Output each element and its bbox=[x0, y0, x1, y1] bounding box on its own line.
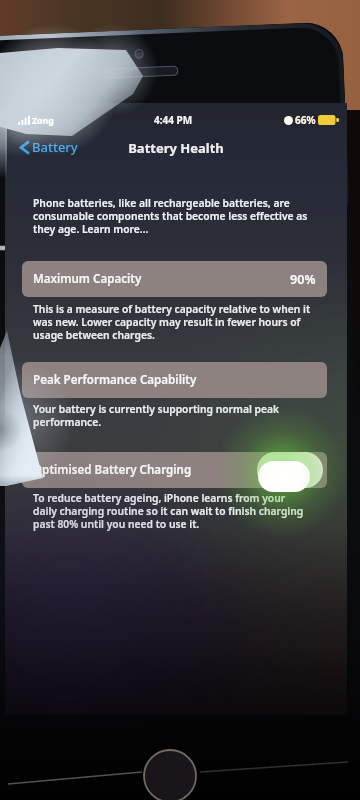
button[interactable]: Maximum Capacity bbox=[22, 261, 327, 297]
staticText: 90% bbox=[290, 271, 316, 288]
staticText: Maximum Capacity bbox=[33, 271, 142, 287]
staticText: Peak Performance Capability bbox=[33, 372, 197, 388]
staticText: This is a measure of battery capacity re… bbox=[33, 302, 319, 342]
staticText: Optimised Battery Charging bbox=[33, 462, 192, 478]
staticText: Zong bbox=[32, 114, 53, 126]
button[interactable]: Peak Performance Capability bbox=[22, 362, 327, 398]
staticText: Battery Health bbox=[5, 139, 347, 157]
staticText: Phone batteries, like all rechargeable b… bbox=[33, 196, 315, 236]
staticText: Battery bbox=[32, 138, 78, 156]
staticText: 4:44 PM bbox=[154, 113, 193, 127]
staticText: To reduce battery ageing, iPhone learns … bbox=[33, 491, 305, 531]
staticText: 66% bbox=[295, 113, 316, 127]
staticText: Your battery is currently supporting nor… bbox=[33, 402, 293, 429]
button[interactable]: Optimised Battery Charging bbox=[22, 452, 327, 488]
button[interactable]: Battery bbox=[18, 137, 77, 157]
button[interactable]: Optimised Battery Charging toggle bbox=[257, 452, 323, 488]
staticText: Zong bbox=[32, 115, 54, 127]
